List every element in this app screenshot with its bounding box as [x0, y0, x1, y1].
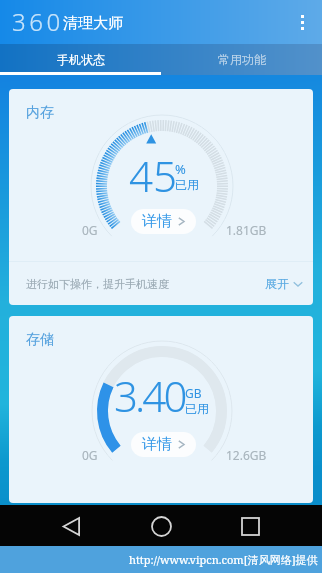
- staticText: 清理大师: [63, 14, 123, 33]
- button[interactable]: 详情: [131, 209, 196, 234]
- staticText: 已用: [175, 177, 199, 192]
- staticText: 0G: [82, 447, 98, 463]
- staticText: 内存: [26, 104, 54, 122]
- button[interactable]: Back: [51, 506, 91, 546]
- button[interactable]: Recents: [230, 506, 270, 546]
- staticText: 常用功能: [218, 52, 266, 67]
- staticText: 0G: [82, 222, 98, 238]
- staticText: %: [175, 160, 186, 178]
- staticText: 3.40: [114, 367, 185, 424]
- staticText: 展开: [265, 276, 289, 291]
- button[interactable]: More options: [282, 2, 322, 42]
- button[interactable]: 详情: [131, 432, 196, 457]
- staticText: 已用: [185, 401, 209, 416]
- button[interactable]: Home: [141, 506, 181, 546]
- staticText: 12.6GB: [226, 447, 267, 463]
- staticText: http://www.vipcn.com[清风网络]提供: [129, 552, 318, 567]
- staticText: 手机状态: [57, 52, 105, 67]
- staticText: 详情: [142, 212, 172, 231]
- staticText: 45: [129, 147, 177, 204]
- staticText: 1.81GB: [226, 222, 267, 238]
- button[interactable]: 常用功能: [161, 44, 322, 75]
- staticText: GB: [185, 385, 202, 401]
- staticText: 存储: [26, 331, 54, 349]
- button[interactable]: 展开: [265, 276, 303, 291]
- staticText: 进行如下操作，提升手机速度: [26, 277, 169, 291]
- button[interactable]: 手机状态: [0, 44, 161, 75]
- staticText: 360: [12, 5, 64, 38]
- staticText: 详情: [142, 435, 172, 454]
